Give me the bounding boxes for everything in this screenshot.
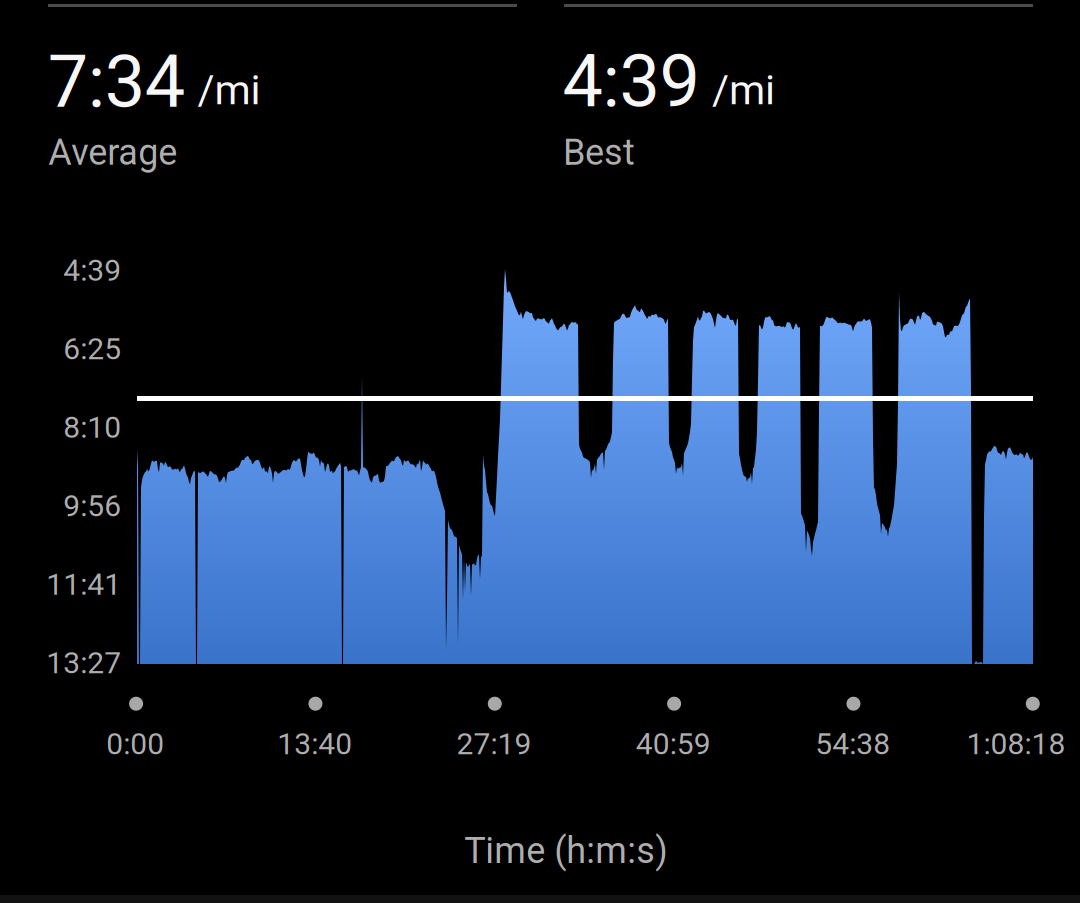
staticText: 4:39 <box>63 253 121 288</box>
staticText: 9:56 <box>63 488 121 523</box>
staticText: 40:59 <box>636 726 711 761</box>
staticText: /mi <box>712 66 775 114</box>
staticText: 7:34 <box>48 40 185 124</box>
staticText: 4:39 <box>562 39 699 124</box>
staticText: 1:08:18 <box>966 726 1065 761</box>
button[interactable]: 7:34 <box>48 0 517 180</box>
staticText: /mi <box>197 66 260 114</box>
staticText: 6:25 <box>63 331 121 367</box>
staticText: 11:41 <box>46 567 121 602</box>
staticText: Average <box>48 131 177 173</box>
staticText: 54:38 <box>815 726 890 761</box>
staticText: 8:10 <box>63 410 121 445</box>
staticText: 0:00 <box>106 726 164 761</box>
staticText: 27:19 <box>456 726 531 761</box>
staticText: 13:40 <box>277 726 352 761</box>
staticText: Time (h:m:s) <box>464 830 668 872</box>
staticText: 13:27 <box>46 645 121 680</box>
button[interactable]: 4:39 <box>562 0 1031 180</box>
staticText: Best <box>563 131 635 173</box>
